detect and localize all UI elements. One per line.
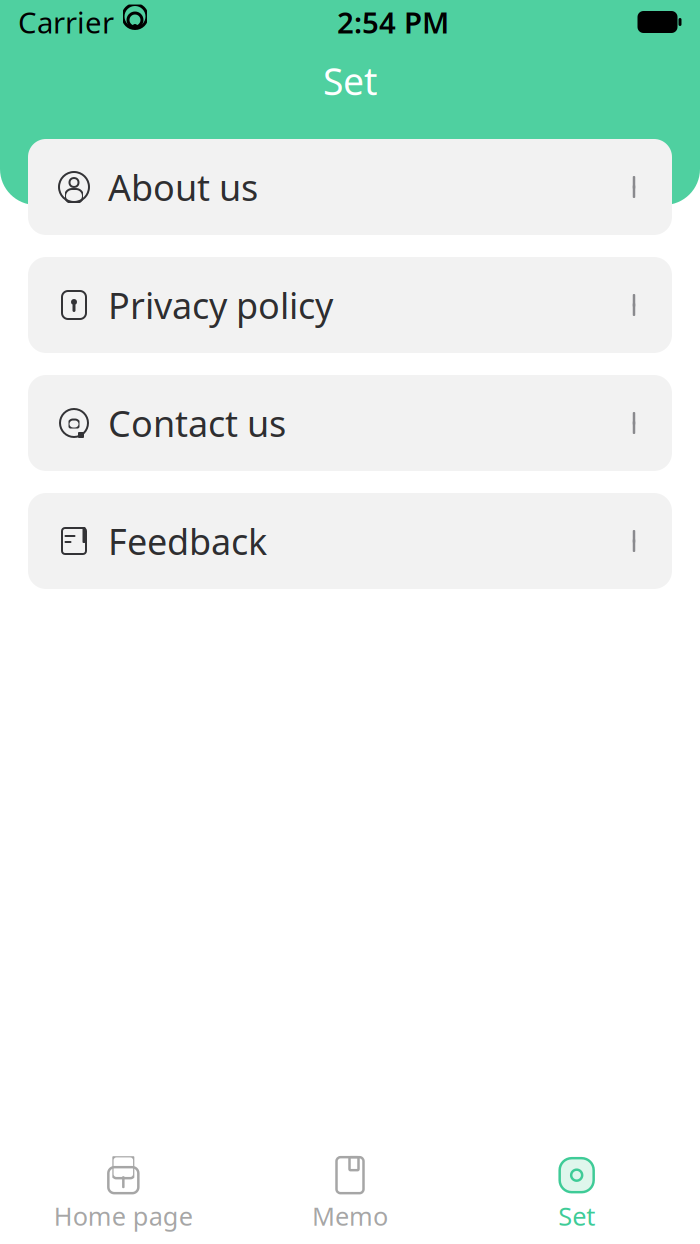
button[interactable]: Privacy policy (28, 257, 672, 353)
button[interactable]: Contact us (28, 375, 672, 471)
button[interactable]: About us (28, 139, 672, 235)
staticText: Contact us (108, 399, 286, 447)
button[interactable]: Set (463, 1150, 690, 1238)
button[interactable]: Feedback (28, 493, 672, 589)
staticText: Feedback (108, 517, 267, 565)
staticText: Carrier (18, 2, 114, 41)
staticText: Set (558, 1199, 595, 1233)
staticText: Privacy policy (108, 281, 333, 329)
staticText: 2:54 PM (337, 2, 449, 41)
staticText: Set (323, 56, 377, 106)
staticText: Memo (312, 1199, 388, 1233)
staticText: Home page (54, 1199, 193, 1233)
button[interactable]: Memo (237, 1150, 463, 1238)
staticText: About us (108, 163, 258, 211)
button[interactable]: Home page (10, 1150, 237, 1238)
